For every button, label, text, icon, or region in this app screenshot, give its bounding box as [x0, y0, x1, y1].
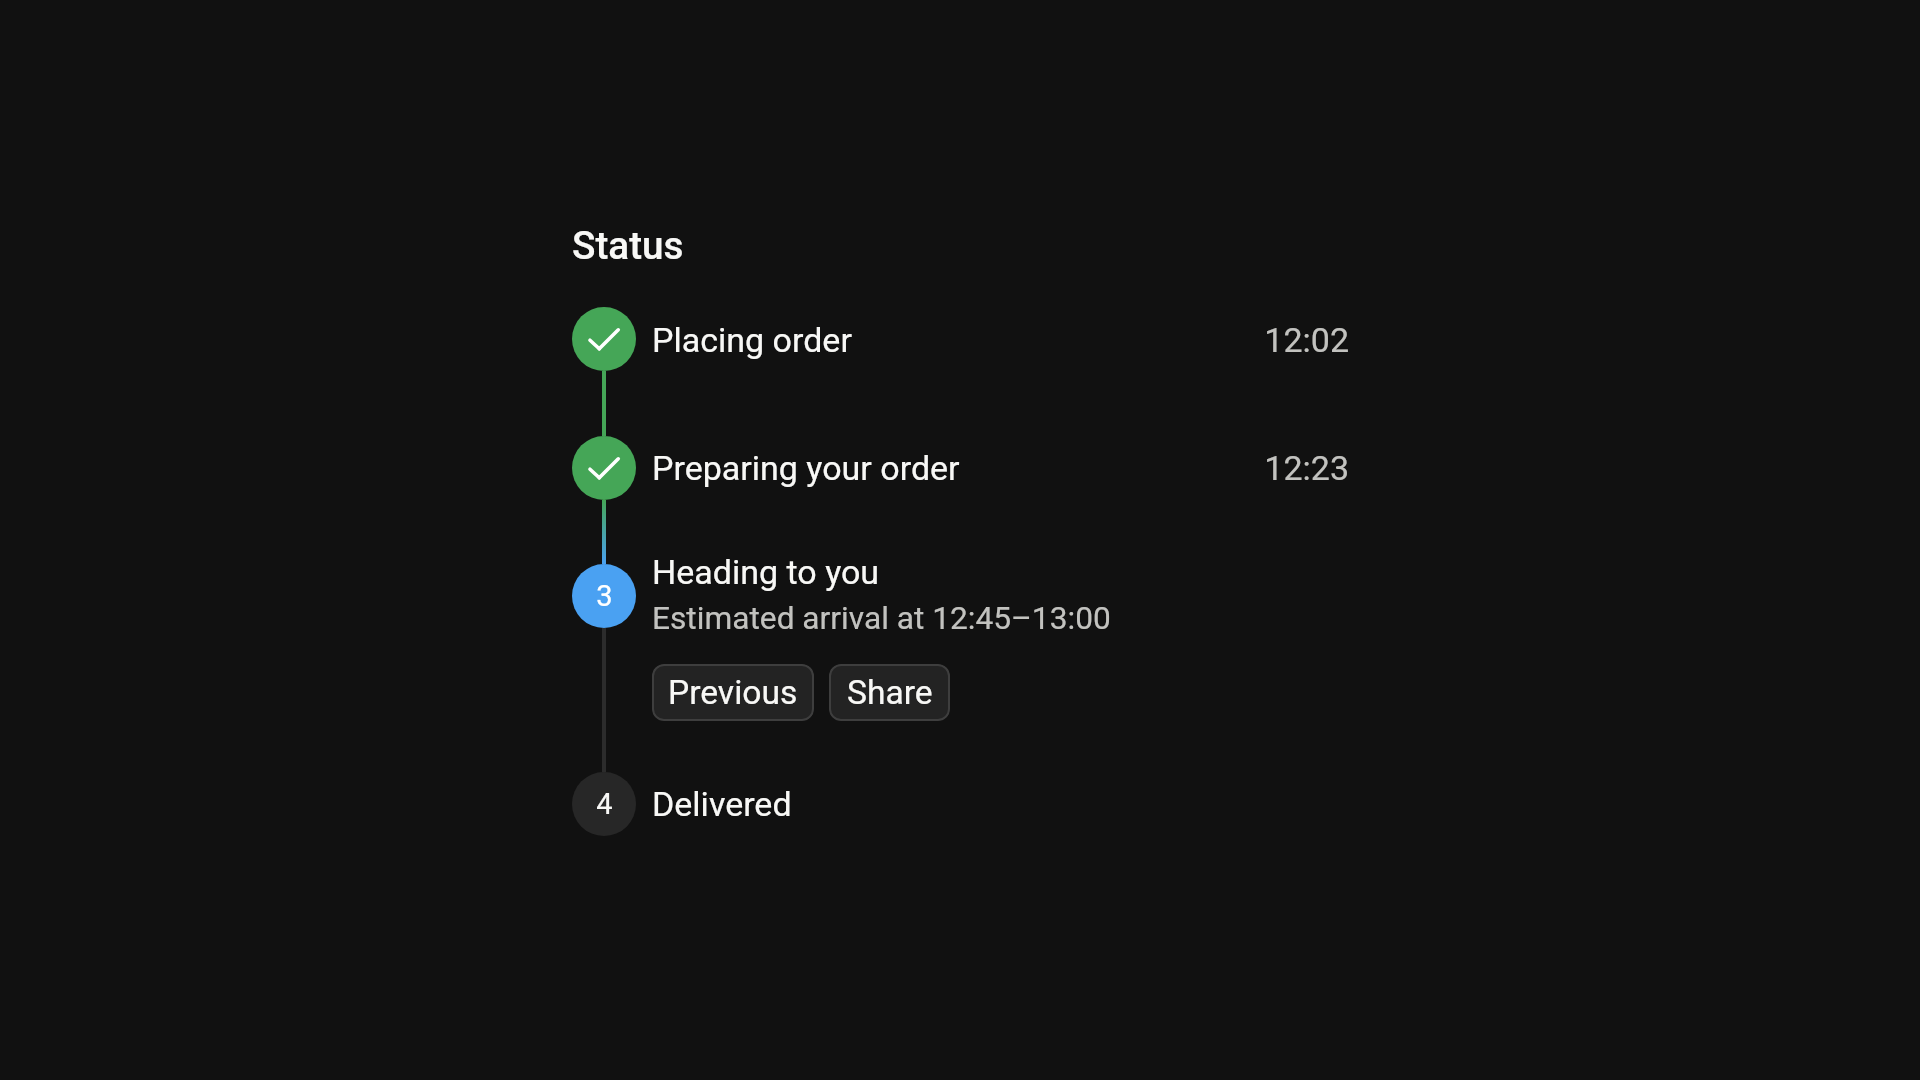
staticText: Placing order: [652, 320, 852, 360]
staticText: Status: [572, 223, 684, 268]
button[interactable]: Preparing your order, 12:23: [572, 436, 1349, 500]
button[interactable]: Previous: [652, 664, 814, 721]
staticText: 4: [596, 787, 613, 821]
button[interactable]: Share: [829, 664, 950, 721]
button[interactable]: Heading to you, estimated arrival at 12:…: [572, 552, 1349, 648]
staticText: Share: [847, 673, 933, 712]
staticText: Delivered: [652, 784, 792, 824]
staticText: Estimated arrival at 12:45–13:00: [652, 600, 1111, 637]
button[interactable]: Placing order, 12:02: [572, 307, 1349, 371]
staticText: 12:02: [1049, 320, 1349, 360]
staticText: 3: [596, 579, 613, 613]
staticText: Previous: [668, 673, 798, 712]
staticText: Heading to you: [652, 552, 880, 592]
button[interactable]: Delivered: [572, 772, 1349, 836]
staticText: 12:23: [1049, 448, 1349, 488]
staticText: Preparing your order: [652, 448, 960, 488]
